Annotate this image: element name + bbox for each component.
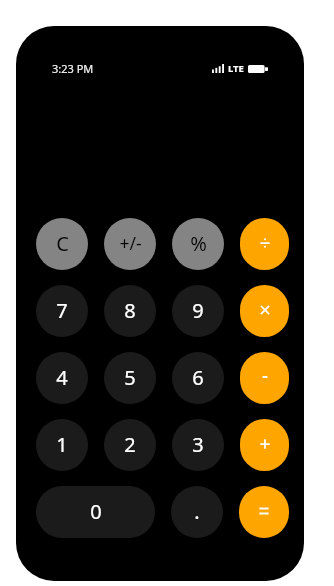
button[interactable]: Eight bbox=[104, 285, 156, 337]
staticText: 8 bbox=[124, 297, 136, 324]
button[interactable]: Equals bbox=[239, 486, 289, 538]
staticText: . bbox=[194, 498, 200, 525]
button[interactable]: Three bbox=[172, 419, 224, 471]
button[interactable]: Divide bbox=[240, 218, 289, 270]
staticText: 7 bbox=[56, 297, 68, 324]
staticText: 9 bbox=[192, 297, 204, 324]
button[interactable]: Nine bbox=[172, 285, 224, 337]
button[interactable]: Decimal point bbox=[171, 486, 223, 538]
staticText: 3:23 PM bbox=[52, 61, 94, 76]
button[interactable]: Two bbox=[104, 419, 156, 471]
button[interactable]: One bbox=[36, 419, 88, 471]
button[interactable]: Seven bbox=[36, 285, 88, 337]
staticText: 3 bbox=[192, 431, 204, 458]
staticText: 4 bbox=[56, 364, 68, 391]
button[interactable]: Zero bbox=[36, 486, 155, 538]
staticText: % bbox=[190, 230, 207, 257]
button[interactable]: Subtract bbox=[240, 352, 289, 404]
button[interactable]: Five bbox=[104, 352, 156, 404]
button[interactable]: Toggle sign bbox=[104, 218, 156, 270]
staticText: +/- bbox=[119, 231, 142, 255]
button[interactable]: Add bbox=[240, 419, 289, 471]
button[interactable]: Multiply bbox=[240, 285, 289, 337]
staticText: 0 bbox=[90, 498, 102, 525]
staticText: 6 bbox=[192, 364, 204, 391]
staticText: C bbox=[56, 230, 69, 257]
button[interactable]: Percent bbox=[172, 218, 224, 270]
button[interactable]: Six bbox=[172, 352, 224, 404]
staticText: 1 bbox=[56, 431, 68, 458]
button[interactable]: Four bbox=[36, 352, 88, 404]
button[interactable]: Clear bbox=[36, 218, 88, 270]
staticText: 2 bbox=[124, 431, 136, 458]
staticText: 5 bbox=[124, 364, 136, 391]
staticText: LTE bbox=[228, 62, 244, 75]
